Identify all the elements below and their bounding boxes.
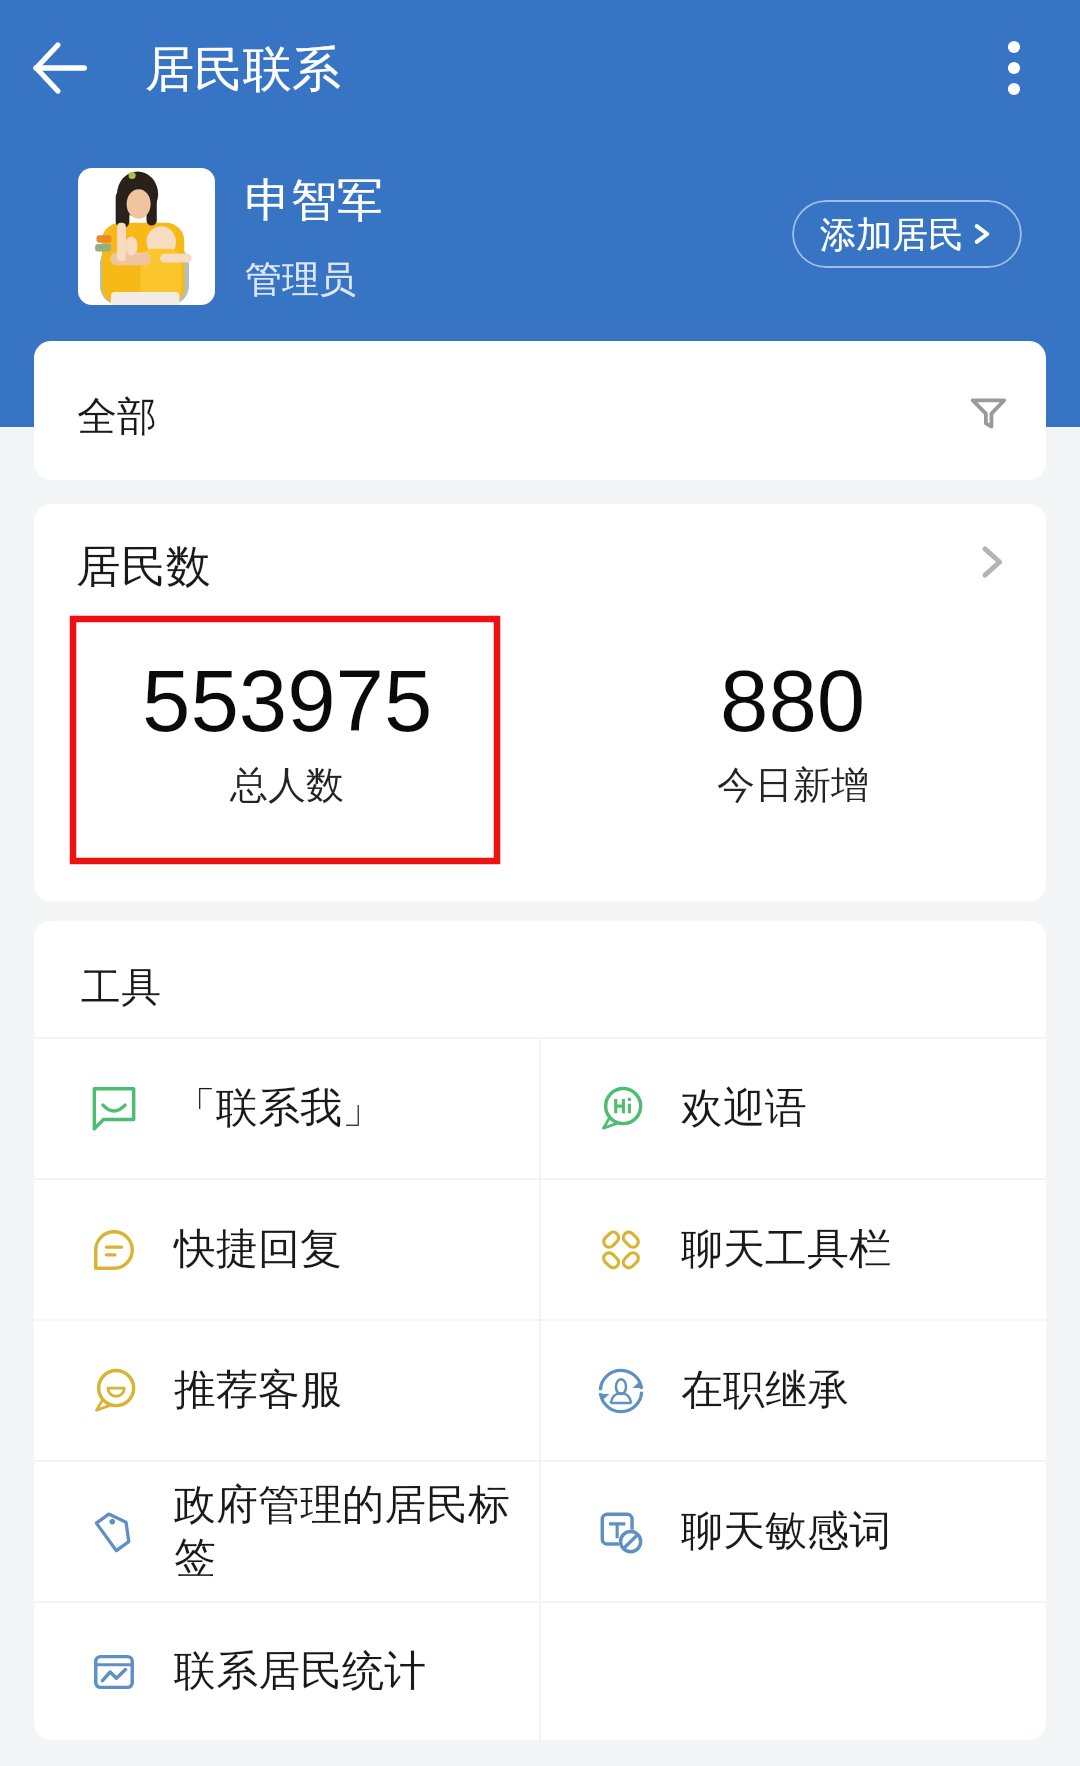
staticText: 聊天工具栏: [681, 1223, 891, 1276]
button[interactable]: 「联系我」: [34, 1039, 539, 1178]
staticText: 今日新增: [717, 761, 869, 809]
staticText: 在职继承: [681, 1364, 849, 1417]
staticText: 总人数: [230, 761, 344, 809]
button[interactable]: 快捷回复: [34, 1180, 539, 1319]
staticText: 政府管理的居民标签: [174, 1479, 529, 1584]
button[interactable]: 聊天敏感词: [541, 1462, 1046, 1601]
button[interactable]: 聊天工具栏: [541, 1180, 1046, 1319]
staticText: 居民数: [76, 539, 211, 596]
button[interactable]: 全部: [34, 341, 1046, 480]
staticText: 申智军: [245, 172, 383, 230]
staticText: 推荐客服: [174, 1364, 342, 1417]
button[interactable]: Resident count detail: [956, 526, 1028, 598]
staticText: 添加居民: [820, 212, 964, 257]
staticText: 欢迎语: [681, 1082, 807, 1135]
staticText: 联系居民统计: [174, 1645, 426, 1698]
staticText: 居民联系: [145, 39, 341, 101]
staticText: 聊天敏感词: [681, 1505, 891, 1558]
button[interactable]: 在职继承: [541, 1321, 1046, 1460]
button[interactable]: 政府管理的居民标签: [34, 1462, 539, 1601]
button[interactable]: 欢迎语: [541, 1039, 1046, 1178]
button[interactable]: Back: [16, 24, 104, 112]
staticText: 快捷回复: [174, 1223, 342, 1276]
button[interactable]: 联系居民统计: [34, 1603, 539, 1740]
button[interactable]: 添加居民: [792, 200, 1022, 268]
staticText: 「联系我」: [174, 1082, 384, 1135]
staticText: 880: [720, 652, 866, 749]
staticText: 管理员: [245, 256, 356, 303]
staticText: 553975: [142, 652, 433, 749]
button[interactable]: 推荐客服: [34, 1321, 539, 1460]
button[interactable]: More options: [970, 24, 1058, 112]
staticText: 工具: [81, 962, 161, 1012]
staticText: 全部: [77, 391, 157, 441]
